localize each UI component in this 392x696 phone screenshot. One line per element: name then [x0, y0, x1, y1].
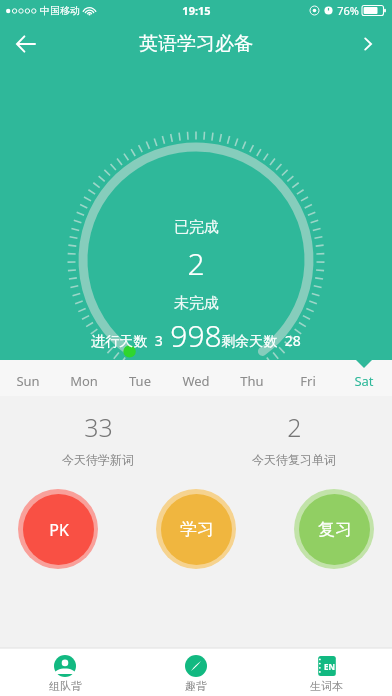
staticText: Sat: [354, 372, 374, 390]
staticText: 2: [287, 410, 302, 444]
button[interactable]: 组队背: [0, 652, 130, 693]
staticText: 已完成: [174, 218, 219, 237]
button[interactable]: 趣背: [130, 652, 261, 693]
button[interactable]: PK: [18, 489, 98, 569]
staticText: 趣背: [185, 679, 207, 693]
button[interactable]: Mon: [56, 372, 112, 390]
staticText: 进行天数 3: [91, 331, 163, 350]
staticText: 学习: [180, 519, 214, 540]
button[interactable]: Wed: [168, 372, 224, 390]
staticText: Wed: [182, 372, 210, 390]
staticText: 今天待学新词: [62, 452, 134, 467]
button[interactable]: Sat: [336, 372, 392, 390]
button[interactable]: EN: [261, 652, 392, 693]
staticText: 复习: [318, 519, 352, 540]
staticText: 中国移动: [40, 4, 80, 17]
staticText: 英语学习必备: [139, 32, 253, 56]
staticText: 未完成: [174, 294, 219, 313]
staticText: 76%: [337, 3, 359, 18]
button[interactable]: Fri: [280, 372, 336, 390]
staticText: 2: [187, 243, 205, 284]
button[interactable]: 2: [196, 410, 392, 467]
staticText: 998: [170, 315, 222, 356]
button[interactable]: Tue: [112, 372, 168, 390]
button[interactable]: 33: [0, 410, 196, 467]
staticText: Sun: [16, 372, 40, 390]
button[interactable]: Thu: [224, 372, 280, 390]
staticText: EN: [324, 661, 335, 672]
button[interactable]: 学习: [156, 489, 236, 569]
staticText: Tue: [129, 372, 151, 390]
staticText: Mon: [70, 372, 98, 390]
staticText: 33: [84, 410, 113, 444]
staticText: Thu: [240, 372, 264, 390]
staticText: 19:15: [182, 3, 211, 18]
staticText: 剩余天数 28: [221, 331, 301, 350]
staticText: Fri: [300, 372, 316, 390]
staticText: PK: [49, 519, 69, 541]
staticText: 生词本: [310, 679, 343, 693]
button[interactable]: More: [344, 20, 392, 68]
staticText: 组队背: [49, 679, 82, 693]
button[interactable]: Sun: [0, 372, 56, 390]
button[interactable]: 复习: [294, 489, 374, 569]
staticText: 今天待复习单词: [252, 452, 336, 467]
button[interactable]: Back: [0, 20, 52, 68]
